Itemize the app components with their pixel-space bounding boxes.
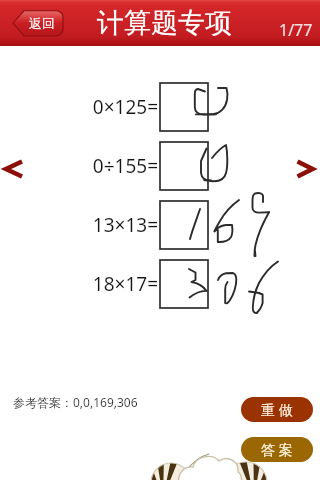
staticText: 0×125= <box>90 94 158 120</box>
staticText: 1/77 <box>279 19 313 41</box>
button[interactable]: Answer box 1 <box>160 83 208 131</box>
button[interactable]: 返回 <box>13 10 63 36</box>
staticText: 13×13= <box>90 212 158 238</box>
staticText: 计算题专项 <box>97 6 232 40</box>
button[interactable]: 答 案 <box>241 437 313 462</box>
staticText: 答 案 <box>261 440 293 459</box>
staticText: 返回 <box>29 15 55 31</box>
staticText: 0÷155= <box>90 153 158 179</box>
button[interactable]: Answer box 3 <box>160 201 208 249</box>
staticText: 参考答案：0,0,169,306 <box>13 394 138 410</box>
button[interactable]: Next question <box>286 150 320 188</box>
button[interactable]: Answer box 4 <box>160 260 208 308</box>
staticText: 18×17= <box>90 271 158 297</box>
button[interactable]: Previous question <box>0 150 34 188</box>
button[interactable]: 重 做 <box>241 397 313 422</box>
staticText: 重 做 <box>261 400 293 419</box>
button[interactable]: Answer box 2 <box>160 142 208 190</box>
